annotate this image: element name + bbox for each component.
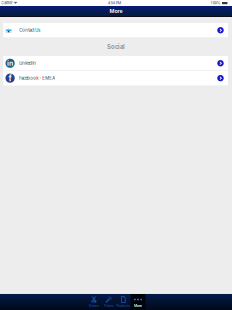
button[interactable]: News: [87, 294, 101, 310]
button[interactable]: f: [3, 71, 228, 85]
staticText: Contact Us: [19, 28, 40, 33]
button[interactable]: Contact Us: [3, 23, 228, 37]
staticText: More: [109, 8, 122, 14]
button[interactable]: Products: [116, 294, 131, 310]
staticText: Facebook - EMEA: [19, 76, 55, 81]
staticText: LinkedIn: [19, 61, 36, 66]
button[interactable]: in: [3, 56, 228, 70]
staticText: Products: [116, 304, 130, 308]
staticText: 4:54 PM: [108, 1, 121, 5]
staticText: Social: [107, 43, 125, 50]
staticText: in: [7, 59, 13, 67]
button[interactable]: Filters: [101, 294, 116, 310]
staticText: 100%: [211, 1, 221, 5]
staticText: Carrier: [1, 1, 12, 5]
staticText: Filters: [104, 304, 114, 308]
staticText: More: [134, 304, 142, 308]
staticText: News: [89, 304, 99, 308]
staticText: f: [9, 73, 12, 83]
button[interactable]: More: [131, 294, 145, 310]
